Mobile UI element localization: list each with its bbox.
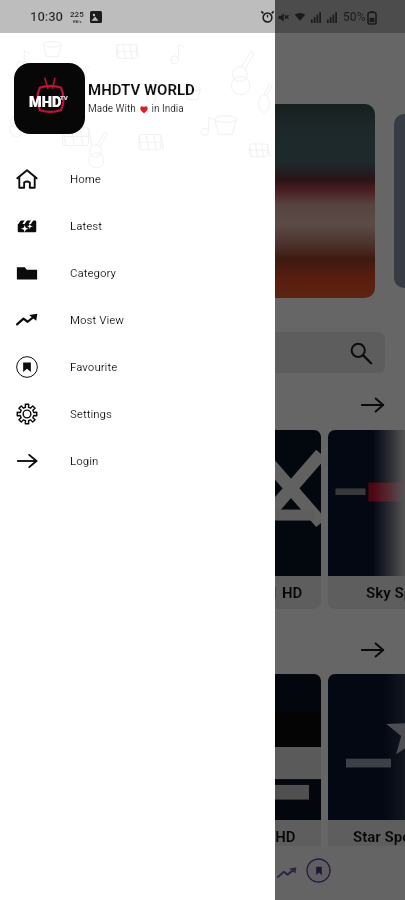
button[interactable]: Favourite	[306, 858, 331, 883]
staticText: Made With	[88, 103, 139, 115]
button[interactable]: Sky Sports	[328, 430, 405, 609]
staticText: TV	[60, 94, 68, 101]
button[interactable]: See all	[355, 388, 389, 422]
staticText: MHD	[29, 94, 62, 111]
button[interactable]: Fox Cricket 1 HD	[171, 430, 321, 609]
button[interactable]: Most View	[261, 847, 313, 899]
button[interactable]: Home	[0, 155, 275, 202]
button[interactable]: Star Sports HD	[328, 674, 405, 853]
button[interactable]: Latest	[0, 202, 275, 249]
button[interactable]: Sony Ten 2 HD	[171, 674, 321, 853]
staticText: Most View	[70, 313, 125, 326]
button[interactable]: See all	[355, 633, 389, 667]
staticText: Sports	[16, 397, 58, 413]
staticText: KB/s	[73, 19, 82, 24]
button[interactable]: Favourite	[0, 343, 275, 390]
staticText: Login	[70, 454, 99, 467]
staticText: MHDTV WORLD	[88, 81, 195, 99]
other: Search	[349, 342, 371, 364]
staticText: Sky Sports	[366, 584, 405, 602]
staticText: in India	[149, 103, 184, 115]
button[interactable]: Settings	[0, 390, 275, 437]
button[interactable]: Most View	[0, 296, 275, 343]
staticText: Latest	[70, 219, 103, 232]
staticText: Settings	[70, 407, 112, 420]
staticText: Favourite	[70, 360, 118, 373]
button[interactable]: Ten Sports HD	[14, 430, 164, 609]
staticText: Fox Cricket 1 HD	[190, 584, 303, 602]
staticText: Category	[70, 266, 117, 279]
button[interactable]: Search	[20, 332, 385, 373]
staticText: Home	[70, 172, 101, 185]
staticText: 10:30	[30, 9, 63, 24]
staticText: 225	[70, 10, 84, 19]
staticText: Star Sports HD	[353, 828, 405, 846]
button[interactable]: Login	[0, 437, 275, 484]
staticText: Sony Ten 2 HD	[197, 828, 296, 846]
staticText: 50%	[343, 10, 366, 24]
button[interactable]: Category	[0, 249, 275, 296]
